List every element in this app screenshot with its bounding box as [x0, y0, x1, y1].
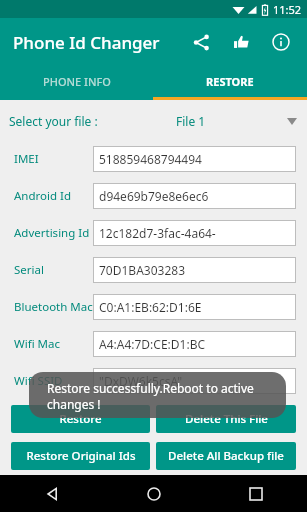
button[interactable]: Recent apps — [205, 475, 307, 512]
button[interactable]: A4:A4:7D:CE:D1:BC — [93, 331, 296, 357]
button[interactable]: Restore — [11, 405, 150, 433]
button[interactable]: Back — [0, 475, 103, 512]
button[interactable]: "DxDW6k5csA" — [93, 368, 296, 394]
staticText: Wifi Mac — [14, 336, 60, 352]
staticText: Serial — [14, 262, 44, 278]
staticText: C0:A1:EB:62:D1:6E — [99, 299, 202, 315]
staticText: 12c182d7-3fac-4a64-a0b4-4563a99a5 — [99, 225, 296, 241]
staticText: 11:52 — [273, 2, 302, 17]
staticText: Restore successfully.Reboot to active ch… — [47, 380, 270, 412]
button[interactable]: 70D1BA303283 — [93, 257, 296, 283]
staticText: Restore Original Ids — [26, 448, 136, 464]
staticText: Android Id — [14, 188, 72, 204]
button[interactable]: PHONE INFO — [0, 66, 153, 97]
staticText: Delete All Backup file — [168, 448, 284, 464]
staticText: Bluetooth Mac — [14, 299, 93, 315]
button[interactable]: 12c182d7-3fac-4a64-a0b4-4563a99a5 — [93, 220, 296, 246]
button[interactable]: 518859468794494 — [93, 146, 296, 172]
staticText: d94e69b79e8e6ec6 — [99, 188, 209, 204]
staticText: RESTORE — [206, 74, 254, 89]
staticText: Advertising Id — [14, 225, 90, 241]
button[interactable]: Rate this app — [221, 22, 261, 62]
button[interactable]: Delete All Backup file — [156, 442, 296, 470]
staticText: Select your file : — [9, 113, 98, 129]
staticText: Restore — [59, 411, 102, 427]
button[interactable]: Delete This File — [156, 405, 296, 433]
staticText: 518859468794494 — [99, 151, 202, 167]
button[interactable]: Select your file : — [0, 106, 307, 136]
staticText: File 1 — [176, 113, 206, 129]
button[interactable]: RESTORE — [153, 66, 307, 97]
button[interactable]: Share — [181, 22, 221, 62]
button[interactable]: About — [261, 22, 301, 62]
staticText: Delete This File — [185, 411, 268, 427]
staticText: A4:A4:7D:CE:D1:BC — [99, 336, 206, 352]
button[interactable]: Home — [103, 475, 205, 512]
button[interactable]: d94e69b79e8e6ec6 — [93, 183, 296, 209]
button[interactable]: C0:A1:EB:62:D1:6E — [93, 294, 296, 320]
staticText: Wifi SSID — [14, 373, 63, 389]
staticText: IMEI — [14, 151, 39, 167]
staticText: 70D1BA303283 — [99, 262, 186, 278]
staticText: Phone Id Changer — [13, 31, 160, 54]
staticText: PHONE INFO — [43, 74, 111, 89]
button[interactable]: Restore Original Ids — [11, 442, 150, 470]
staticText: "DxDW6k5csA" — [99, 373, 183, 389]
